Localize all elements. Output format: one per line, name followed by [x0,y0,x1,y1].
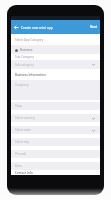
button[interactable]: Next [87,20,100,34]
button[interactable]: Area [11,162,100,170]
staticText: Sub Category [15,55,34,59]
staticText: Area [15,164,22,168]
staticText: Company [15,83,29,87]
staticText: Sub category [15,63,34,67]
staticText: Select city [15,140,29,144]
staticText: Select App Category [15,38,44,42]
button[interactable]: Select state [11,126,100,134]
staticText: Business Information [15,73,46,77]
button[interactable]: Shop [11,102,100,110]
button[interactable]: Pincode [11,150,100,158]
staticText: Create new mini app [21,25,53,29]
staticText: Next [90,25,97,29]
staticText: Select country [15,116,35,120]
staticText: Pincode [15,152,27,156]
staticText: Select state [15,128,32,132]
staticText: Contact Info [15,171,33,175]
button[interactable]: Sub category [11,60,100,69]
staticText: Business [20,48,33,52]
button[interactable]: Business [11,45,100,54]
button[interactable]: Select city [11,138,100,146]
button[interactable]: Back [11,20,21,34]
button[interactable]: Select country [11,114,100,122]
staticText: Shop [15,104,23,108]
